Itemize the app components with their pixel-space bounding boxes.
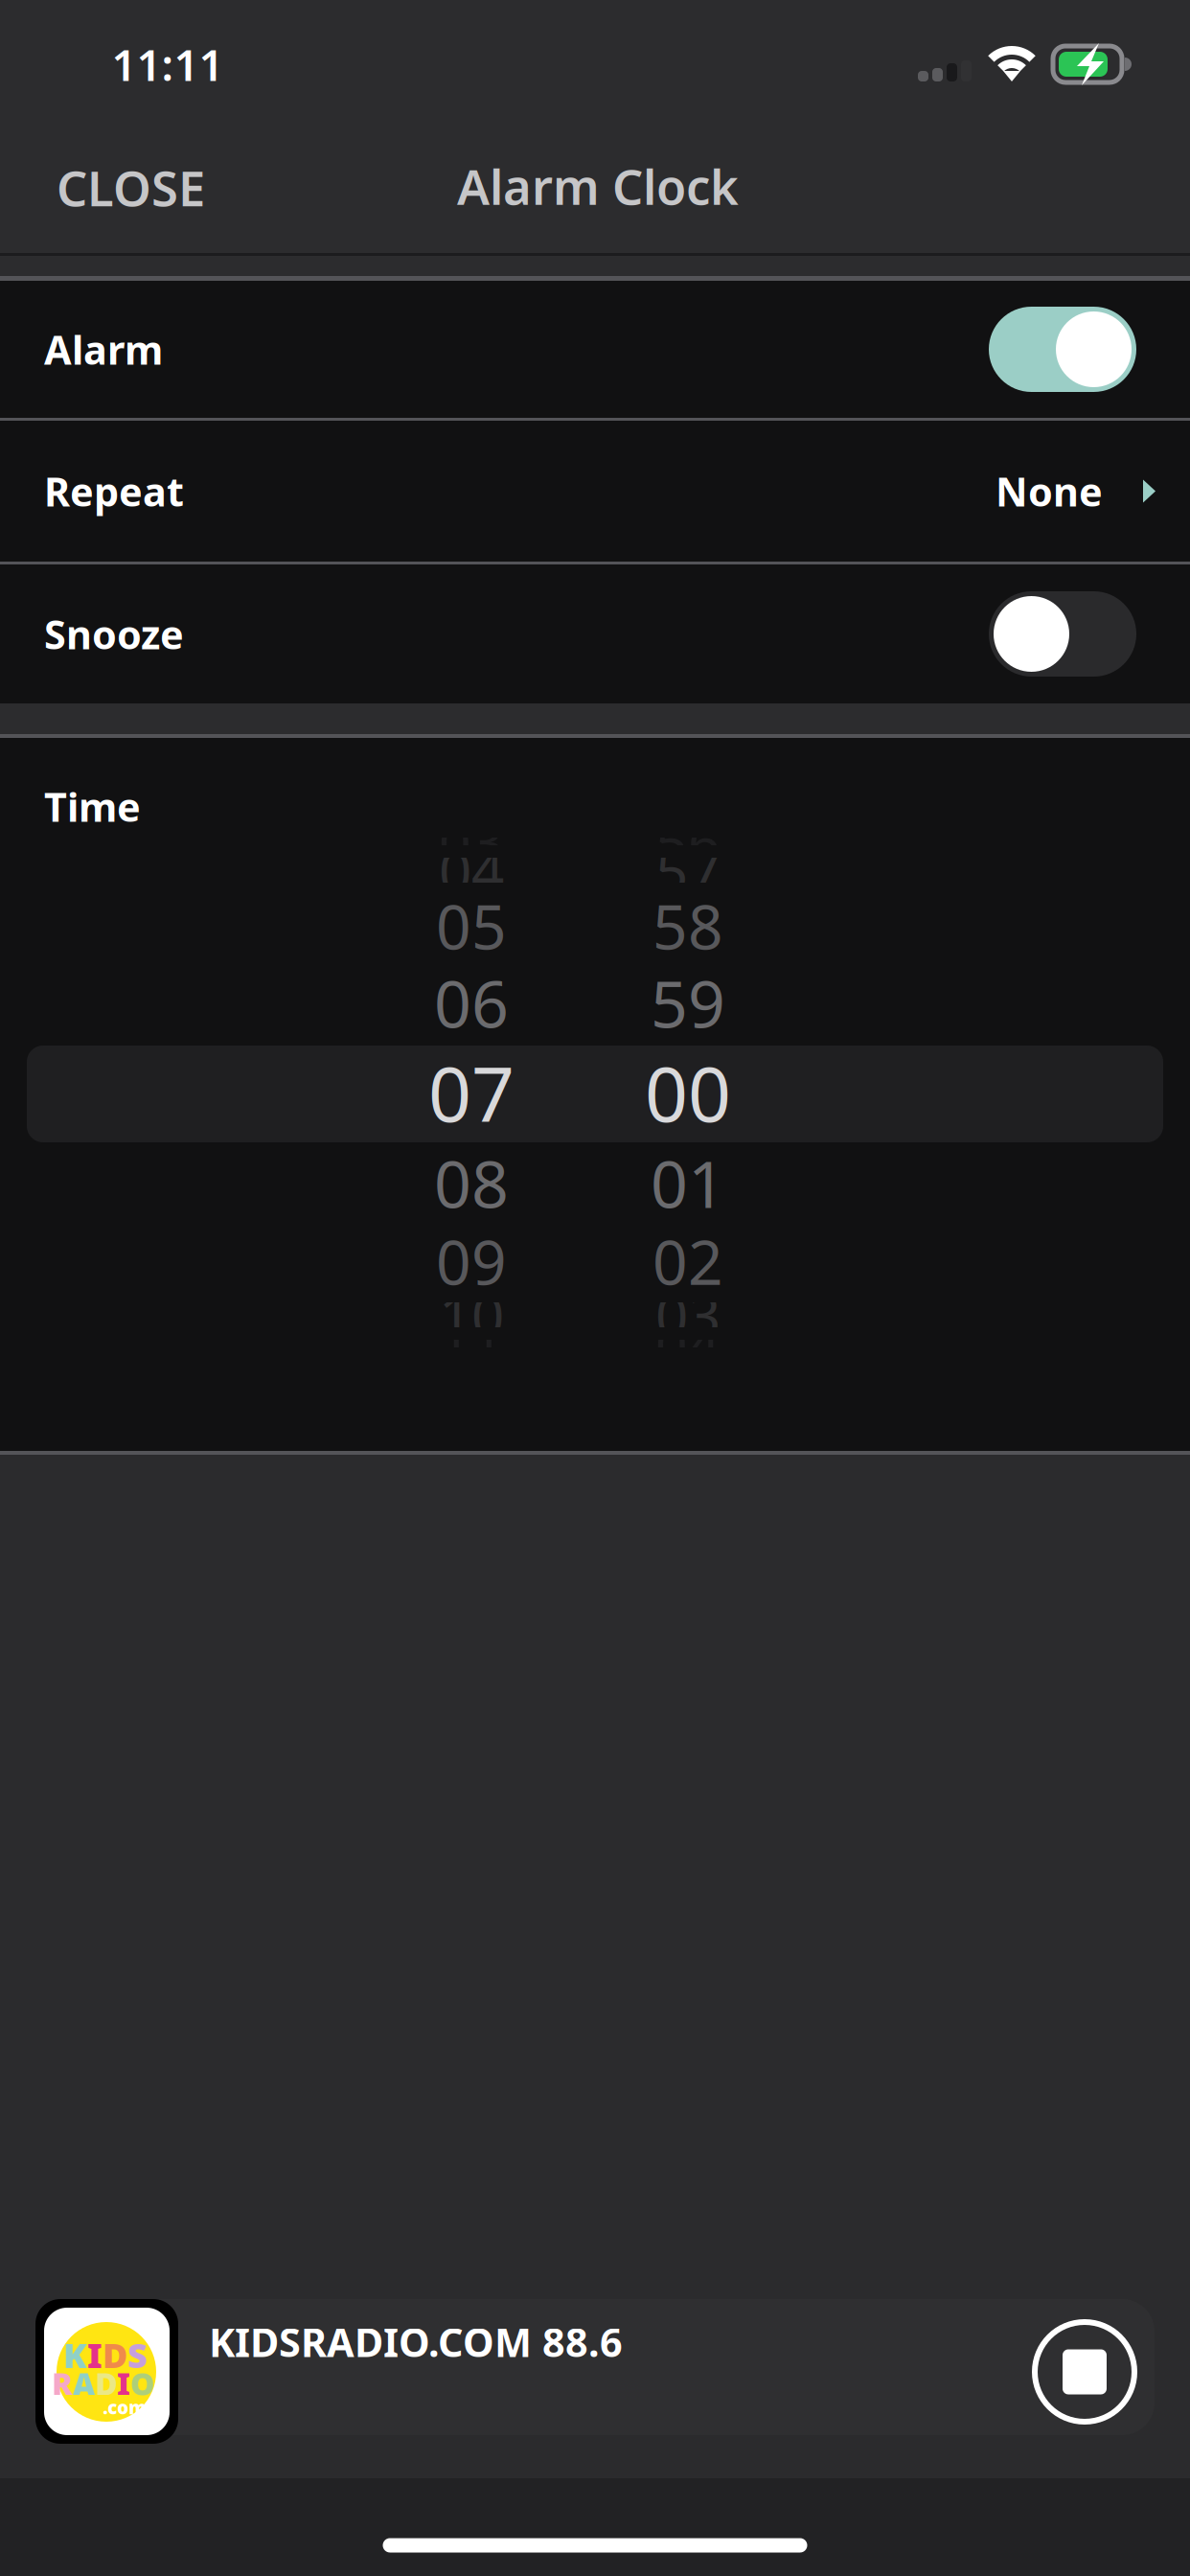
staticText: 56 [655,804,721,879]
staticText: 01 [651,1139,725,1226]
staticText: 08 [434,1139,509,1226]
staticText: 02 [652,1220,723,1302]
button[interactable]: Repeat [0,421,1190,562]
staticText: A [73,2363,95,2404]
staticText: I [117,2363,130,2404]
staticText: Snooze [44,608,184,660]
staticText: 11 [439,1306,504,1381]
button[interactable]: Hour [0,738,1190,1451]
staticText: 11:11 [112,35,224,93]
button[interactable]: Stop playback [1017,2304,1153,2440]
staticText: 00 [645,1042,731,1143]
staticText: Alarm [44,323,163,376]
staticText: 10 [439,1277,504,1353]
staticText: 58 [652,885,723,966]
staticText: O [130,2363,155,2404]
staticText: 09 [436,1220,507,1302]
staticText: .com [103,2395,147,2419]
staticText: KIDSRADIO.COM 88.6 [209,2315,623,2368]
staticText: Time [44,780,141,833]
staticText: Repeat [44,465,184,517]
staticText: S [127,2332,148,2378]
staticText: CLOSE [57,155,205,220]
staticText: 04 [439,832,504,908]
staticText: D [95,2363,117,2404]
staticText: 57 [655,832,721,908]
staticText: 06 [434,959,509,1046]
staticText: 07 [428,1042,515,1143]
staticText: 04 [655,1306,721,1381]
staticText: I [87,2332,103,2378]
staticText: None [995,465,1103,517]
button[interactable]: Alarm [0,281,1190,418]
button[interactable]: CLOSE [0,128,250,247]
button[interactable]: Minute [0,738,1190,1451]
button[interactable]: Snooze [0,564,1190,703]
staticText: Alarm Clock [457,154,739,218]
staticText: 03 [439,804,504,879]
staticText: 05 [436,885,507,966]
button[interactable]: K [0,2299,1190,2445]
staticText: D [103,2332,127,2378]
staticText: R [52,2363,73,2404]
staticText: K [63,2332,87,2378]
staticText: 03 [655,1277,721,1353]
staticText: 59 [651,959,725,1046]
